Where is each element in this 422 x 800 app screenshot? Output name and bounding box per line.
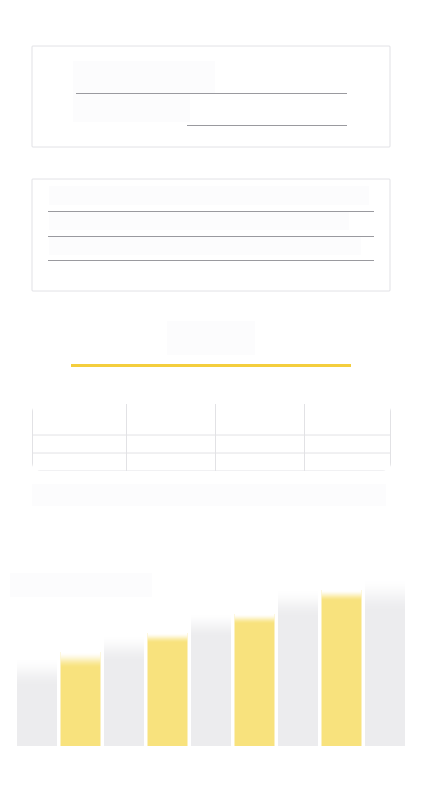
button[interactable]: [32, 46, 390, 147]
button[interactable]: [32, 179, 390, 291]
